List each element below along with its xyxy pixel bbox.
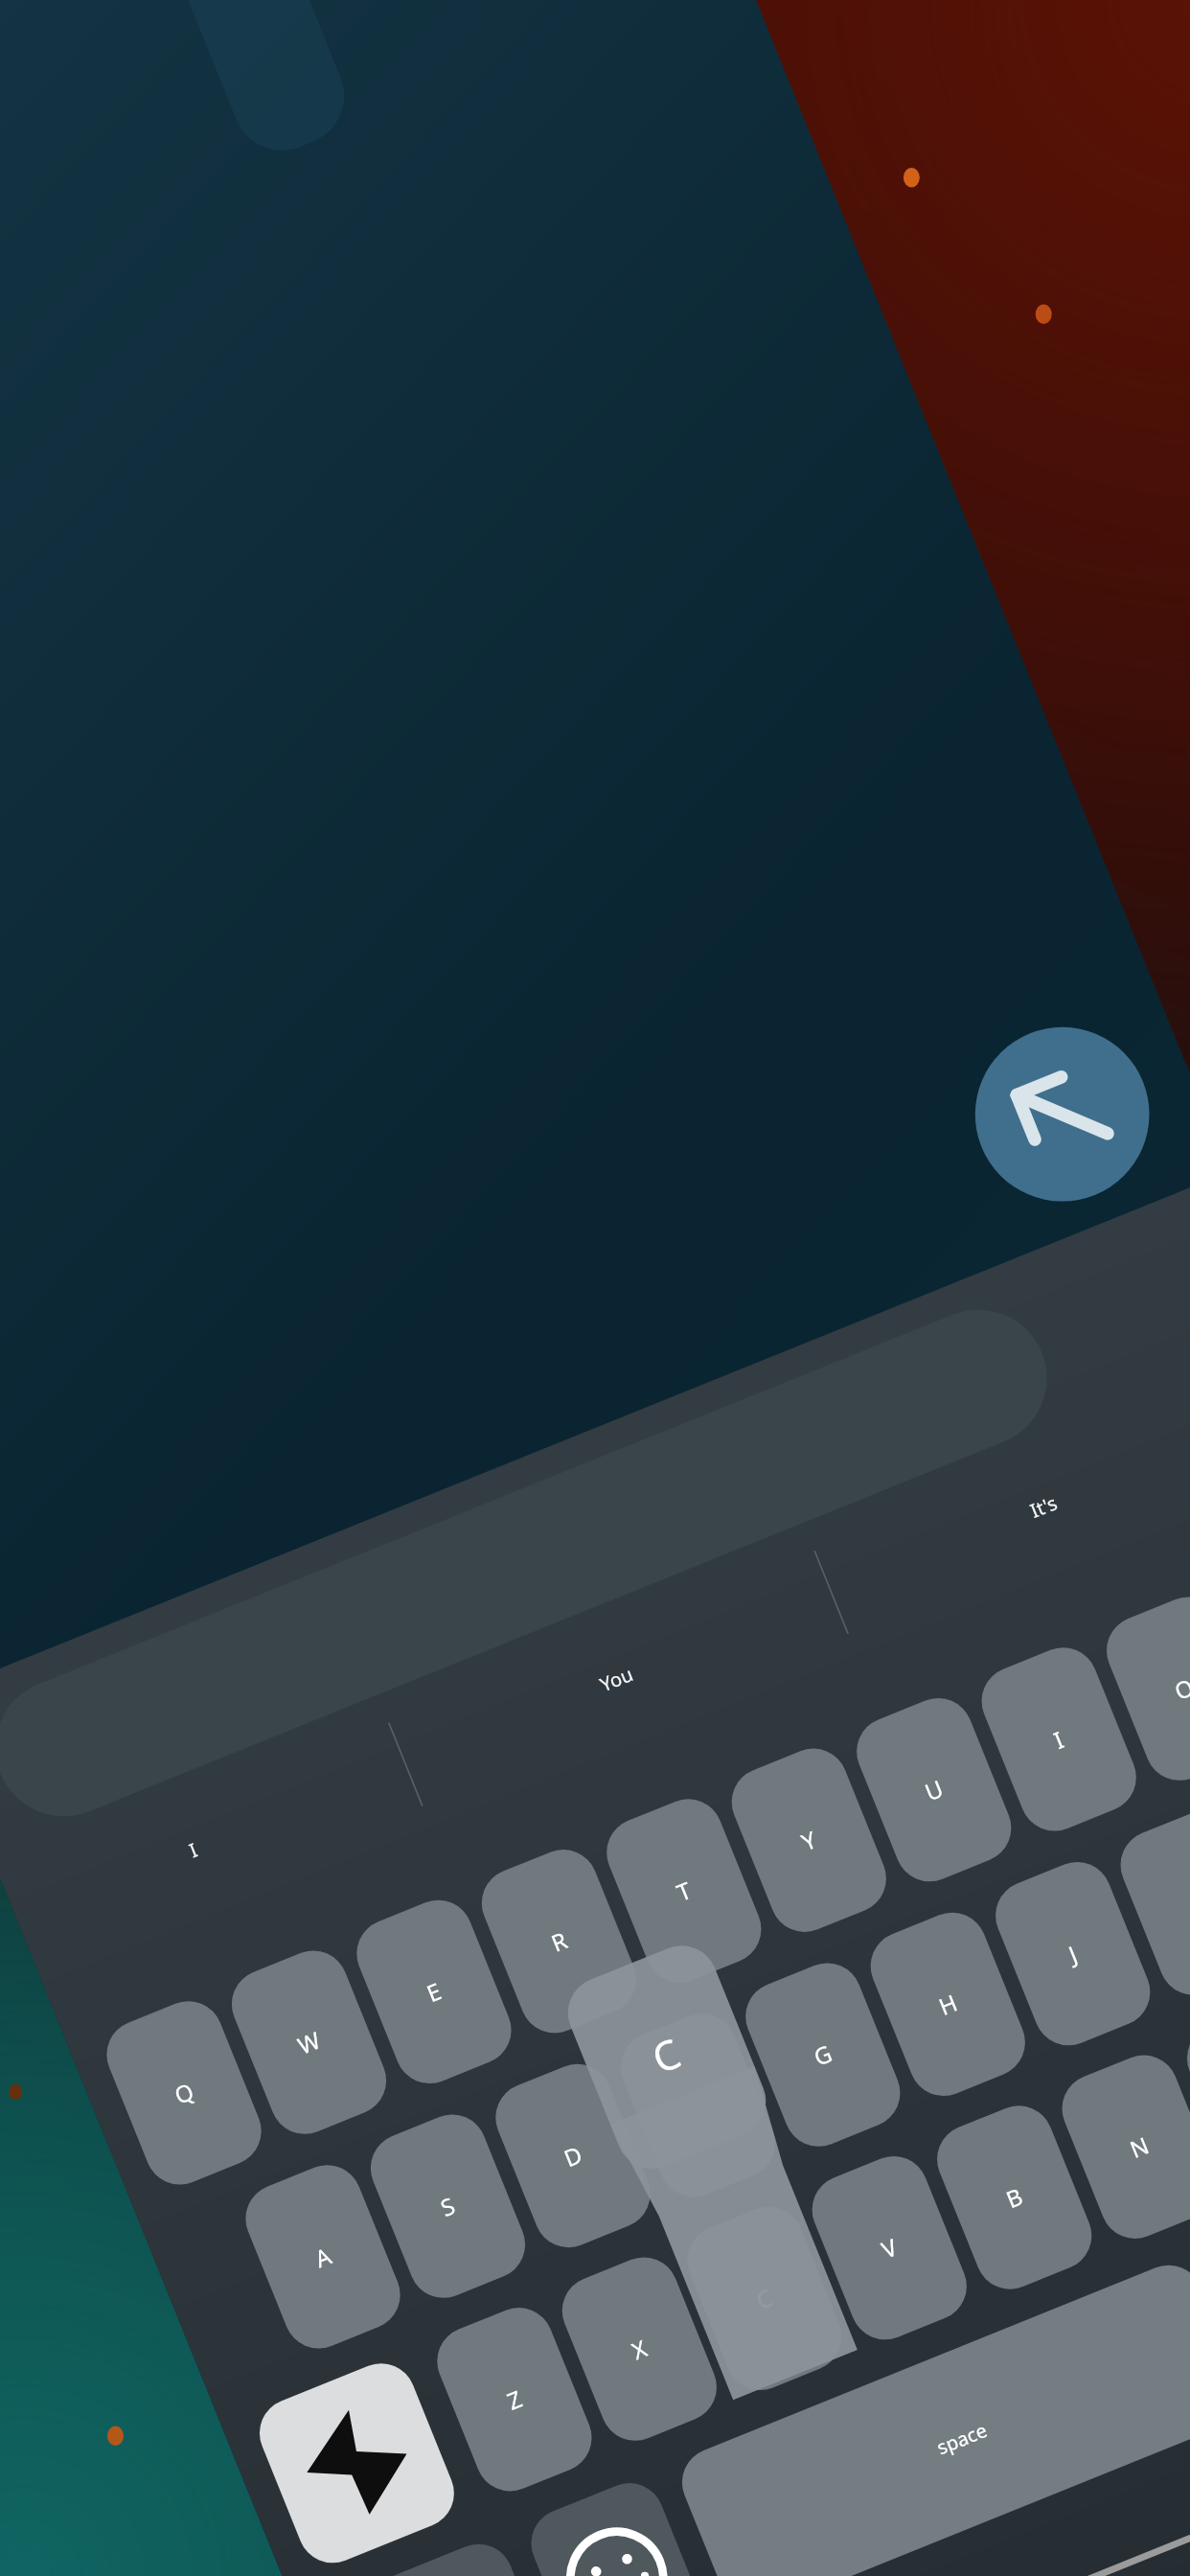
button[interactable]: Messaging app with on-screen keyboard [0, 0, 1190, 2576]
